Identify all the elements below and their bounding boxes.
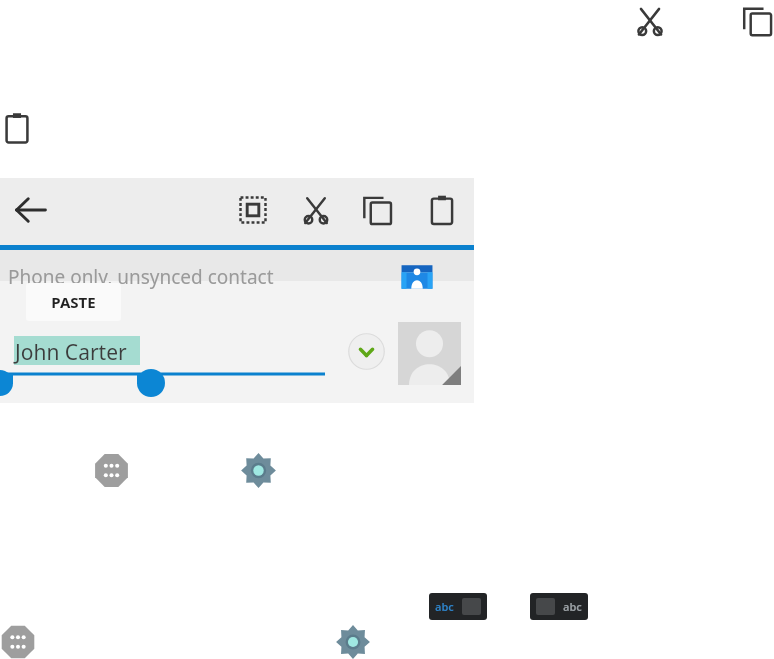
button[interactable]: Copy: [357, 188, 401, 232]
staticText: abc: [563, 599, 582, 614]
button[interactable]: Apps: [93, 452, 130, 489]
button[interactable]: Contact source: [396, 256, 438, 298]
button[interactable]: Paste: [420, 188, 464, 232]
button[interactable]: PASTE: [26, 283, 121, 321]
button[interactable]: Keyboard layout abc: [429, 593, 487, 620]
button[interactable]: Select all: [231, 188, 275, 232]
button[interactable]: Apps: [0, 624, 36, 659]
button[interactable]: Settings: [335, 624, 371, 659]
button[interactable]: Copy: [739, 1, 774, 41]
staticText: John Carter: [15, 338, 127, 367]
button[interactable]: Cut: [629, 0, 671, 42]
staticText: Phone only, unsynced contact: [8, 264, 274, 290]
button[interactable]: Contact photo: [398, 322, 461, 385]
staticText: PASTE: [51, 292, 96, 312]
button[interactable]: Keyboard layout abc alternate: [530, 593, 588, 620]
button[interactable]: Back: [9, 188, 53, 232]
button[interactable]: Cut: [294, 188, 338, 232]
button[interactable]: Paste: [0, 107, 38, 149]
button[interactable]: Expand name fields: [348, 333, 385, 370]
button[interactable]: Settings: [240, 452, 277, 489]
staticText: abc: [435, 599, 454, 614]
